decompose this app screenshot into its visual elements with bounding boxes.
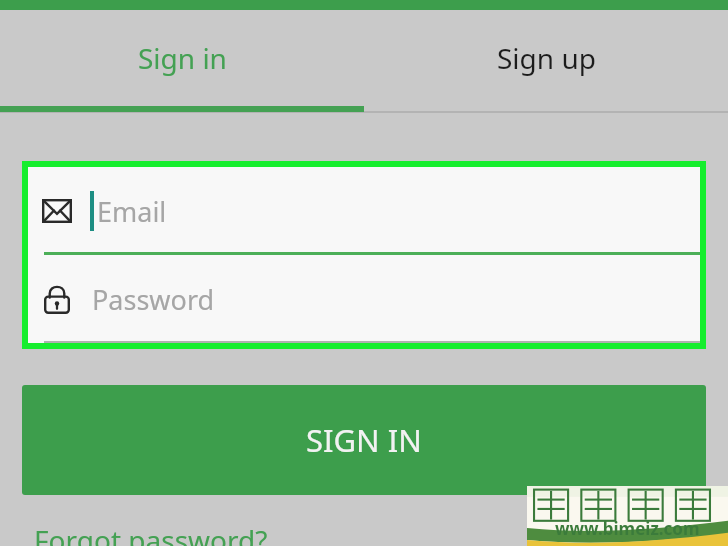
staticText: Password (92, 281, 215, 318)
button[interactable]: Sign in (0, 10, 364, 106)
button[interactable]: Password (28, 255, 700, 343)
staticText: SIGN IN (306, 419, 422, 461)
other: Email (42, 199, 72, 223)
staticText: Forgot password? (34, 521, 268, 546)
other: Password (44, 284, 70, 314)
staticText: Sign in (138, 39, 227, 77)
staticText: Email (97, 193, 167, 230)
staticText: www.bimeiz.com (555, 517, 700, 540)
button[interactable]: Sign up (364, 10, 728, 106)
staticText: Sign up (497, 39, 596, 77)
button[interactable]: Forgot password? (34, 521, 268, 546)
button[interactable]: Email (28, 167, 700, 255)
button[interactable]: SIGN IN (22, 385, 706, 495)
